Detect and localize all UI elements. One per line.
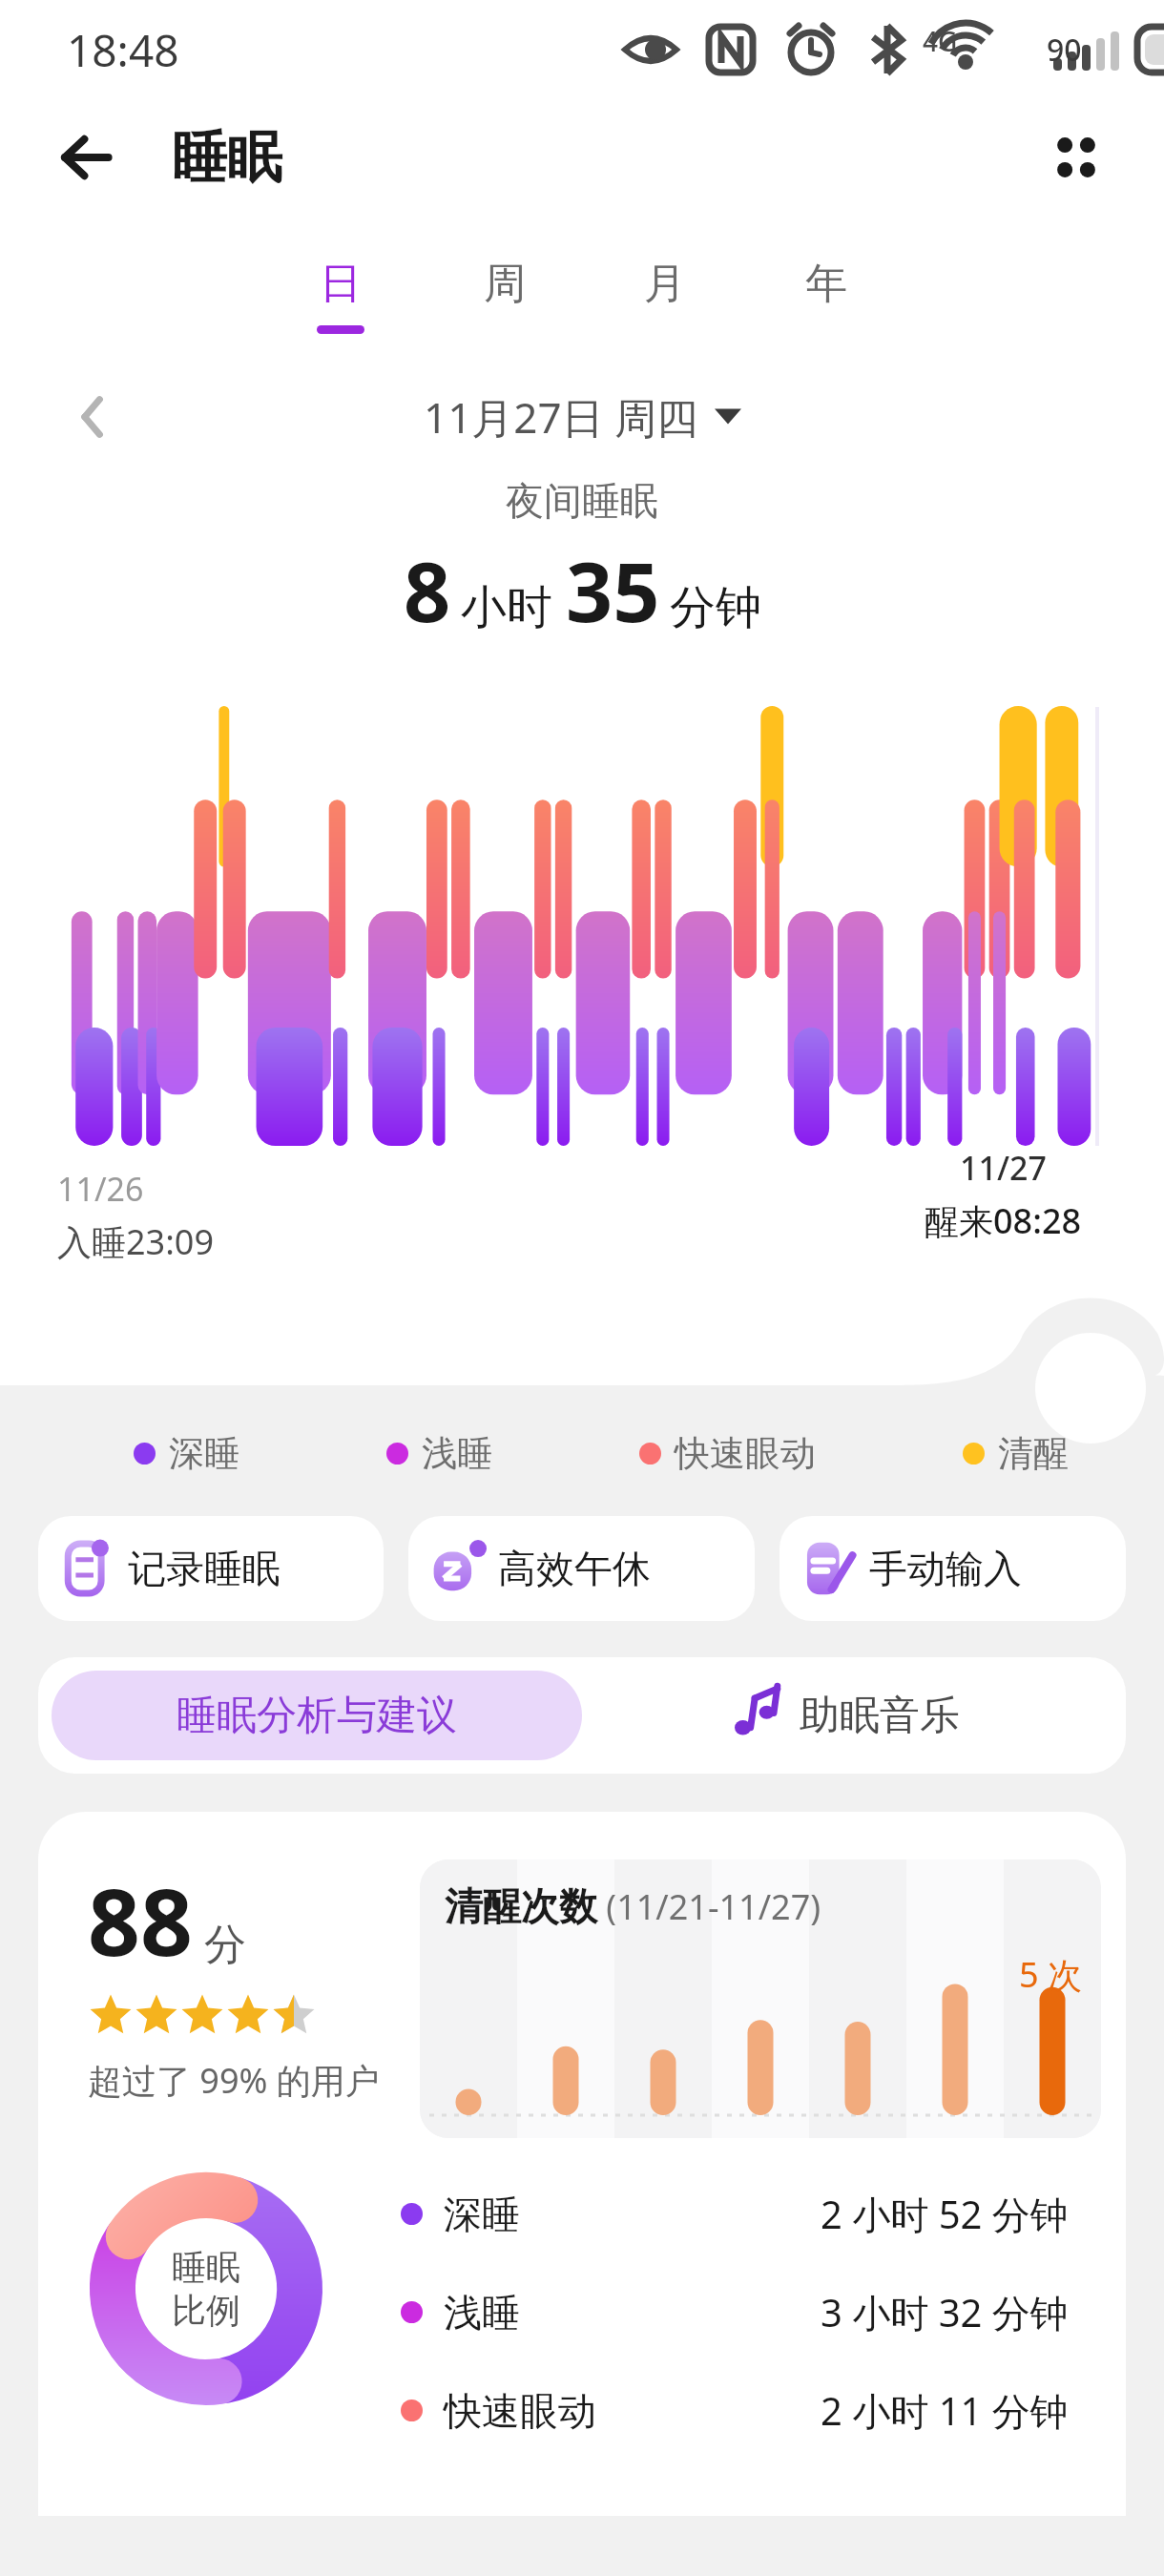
button[interactable]: 深睡: [134, 1431, 239, 1476]
staticText: 2 小时 52 分钟: [821, 2188, 1069, 2240]
button[interactable]: 月: [633, 254, 697, 338]
staticText: 夜间睡眠: [0, 477, 1164, 525]
button[interactable]: Previous day: [59, 383, 128, 451]
staticText: 日: [320, 258, 362, 310]
button[interactable]: 浅睡: [386, 1431, 492, 1476]
staticText: 清醒次数: [445, 1882, 597, 1930]
staticText: 睡眠: [172, 2246, 240, 2289]
staticText: 浅睡: [444, 2289, 520, 2337]
staticText: 月: [644, 258, 686, 310]
staticText: 分: [204, 1919, 246, 1971]
staticText: 手动输入: [869, 1545, 1022, 1592]
button[interactable]: 睡眠分析与建议: [52, 1671, 582, 1760]
staticText: 浅睡: [422, 1431, 492, 1476]
staticText: 超过了 99% 的用户: [88, 2057, 380, 2104]
staticText: 醒来08:28: [925, 1197, 1082, 1244]
staticText: 比例: [172, 2289, 240, 2332]
staticText: 快速眼动: [444, 2387, 596, 2435]
staticText: 快速眼动: [675, 1431, 816, 1476]
staticText: 4G: [923, 23, 958, 59]
staticText: 年: [805, 258, 847, 310]
staticText: 18:48: [67, 20, 179, 80]
button[interactable]: 快速眼动: [639, 1431, 816, 1476]
staticText: 35: [566, 534, 660, 646]
staticText: (11/21-11/27): [597, 1883, 821, 1930]
staticText: 3 小时 32 分钟: [821, 2286, 1069, 2338]
staticText: 深睡: [444, 2191, 520, 2238]
staticText: 11月27日 周四: [424, 388, 699, 446]
button[interactable]: Back: [46, 115, 130, 199]
staticText: 分钟: [670, 579, 761, 636]
button[interactable]: 手动输入: [779, 1516, 1126, 1621]
staticText: 11/26: [57, 1167, 144, 1211]
staticText: 助眠音乐: [800, 1691, 960, 1741]
staticText: 睡眠: [172, 123, 282, 193]
staticText: 90: [1047, 29, 1082, 71]
staticText: 11/27: [960, 1146, 1047, 1190]
button[interactable]: 日: [305, 254, 376, 338]
staticText: 入睡23:09: [57, 1218, 215, 1265]
button[interactable]: Sleep assistant: [1035, 1333, 1146, 1444]
button[interactable]: 助眠音乐: [582, 1671, 1112, 1760]
button[interactable]: More options: [1034, 115, 1118, 199]
button[interactable]: 周: [472, 254, 537, 338]
staticText: 记录睡眠: [128, 1545, 281, 1592]
button[interactable]: 快速眼动: [401, 2384, 1088, 2437]
button[interactable]: 年: [794, 254, 859, 338]
button[interactable]: 11月27日 周四: [418, 383, 747, 451]
button[interactable]: 高效午休: [408, 1516, 755, 1621]
button[interactable]: 清醒: [963, 1431, 1069, 1476]
staticText: 8: [404, 534, 451, 646]
staticText: 高效午休: [498, 1545, 651, 1592]
staticText: 2 小时 11 分钟: [821, 2384, 1069, 2437]
staticText: 周: [484, 258, 526, 310]
button[interactable]: 浅睡: [401, 2286, 1088, 2338]
staticText: 小时: [461, 579, 552, 636]
staticText: 深睡: [169, 1431, 239, 1476]
staticText: 睡眠分析与建议: [177, 1691, 457, 1741]
button[interactable]: 深睡: [401, 2188, 1088, 2240]
staticText: 清醒: [998, 1431, 1069, 1476]
staticText: 88: [88, 1858, 193, 1983]
button[interactable]: 记录睡眠: [38, 1516, 384, 1621]
staticText: 5 次: [1019, 1951, 1082, 1998]
